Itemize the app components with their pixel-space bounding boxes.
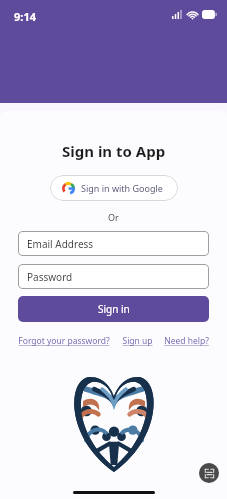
other: App logo (67, 371, 161, 472)
staticText: Sign up (122, 335, 153, 347)
button[interactable]: Forgot your password? (18, 335, 110, 347)
staticText: Sign in to App (62, 141, 166, 161)
staticText: 9:14 (14, 9, 36, 24)
staticText: Or (108, 211, 119, 223)
button[interactable]: Sign in with Google (50, 175, 178, 201)
staticText: Email Address (27, 237, 94, 251)
button[interactable]: Sign in (18, 296, 209, 322)
staticText: Sign in (98, 302, 130, 316)
button[interactable]: Email Address (18, 231, 209, 256)
button[interactable]: Sign up (122, 335, 153, 347)
staticText: Need help? (164, 335, 209, 347)
button[interactable]: Need help? (164, 335, 209, 347)
button[interactable]: Password (18, 264, 209, 289)
staticText: Forgot your password? (18, 335, 110, 347)
button[interactable]: Scan (199, 463, 219, 483)
staticText: Sign in with Google (81, 182, 163, 194)
staticText: Password (27, 270, 73, 284)
